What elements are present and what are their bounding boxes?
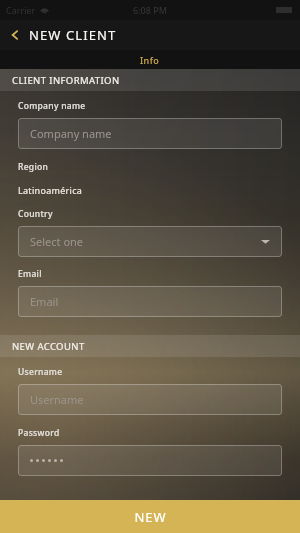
button[interactable]: Back: [0, 22, 125, 48]
staticText: Country: [18, 208, 53, 220]
staticText: NEW CLIENT: [29, 26, 117, 44]
button[interactable]: NEW: [0, 500, 300, 533]
button[interactable]: Username: [18, 384, 282, 415]
staticText: Email: [18, 268, 42, 280]
staticText: NEW: [134, 508, 167, 526]
staticText: CLIENT INFORMATION: [12, 74, 120, 87]
staticText: Company name: [30, 126, 112, 141]
button[interactable]: Info: [122, 52, 178, 68]
staticText: Email: [30, 294, 59, 309]
staticText: Username: [18, 366, 63, 378]
staticText: Carrier: [6, 4, 36, 16]
staticText: Password: [18, 427, 60, 439]
button[interactable]: Select one: [18, 226, 282, 257]
staticText: 6:08 PM: [133, 4, 167, 16]
staticText: Username: [30, 392, 84, 407]
button[interactable]: Email: [18, 286, 282, 317]
button[interactable]: [18, 445, 282, 476]
staticText: Select one: [30, 234, 84, 249]
staticText: Info: [140, 54, 160, 66]
button[interactable]: Latinoamérica: [18, 184, 83, 196]
staticText: NEW ACCOUNT: [12, 340, 85, 353]
staticText: Company name: [18, 100, 86, 112]
staticText: Region: [18, 161, 49, 173]
other: Back: [9, 29, 21, 41]
button[interactable]: Company name: [18, 118, 282, 149]
